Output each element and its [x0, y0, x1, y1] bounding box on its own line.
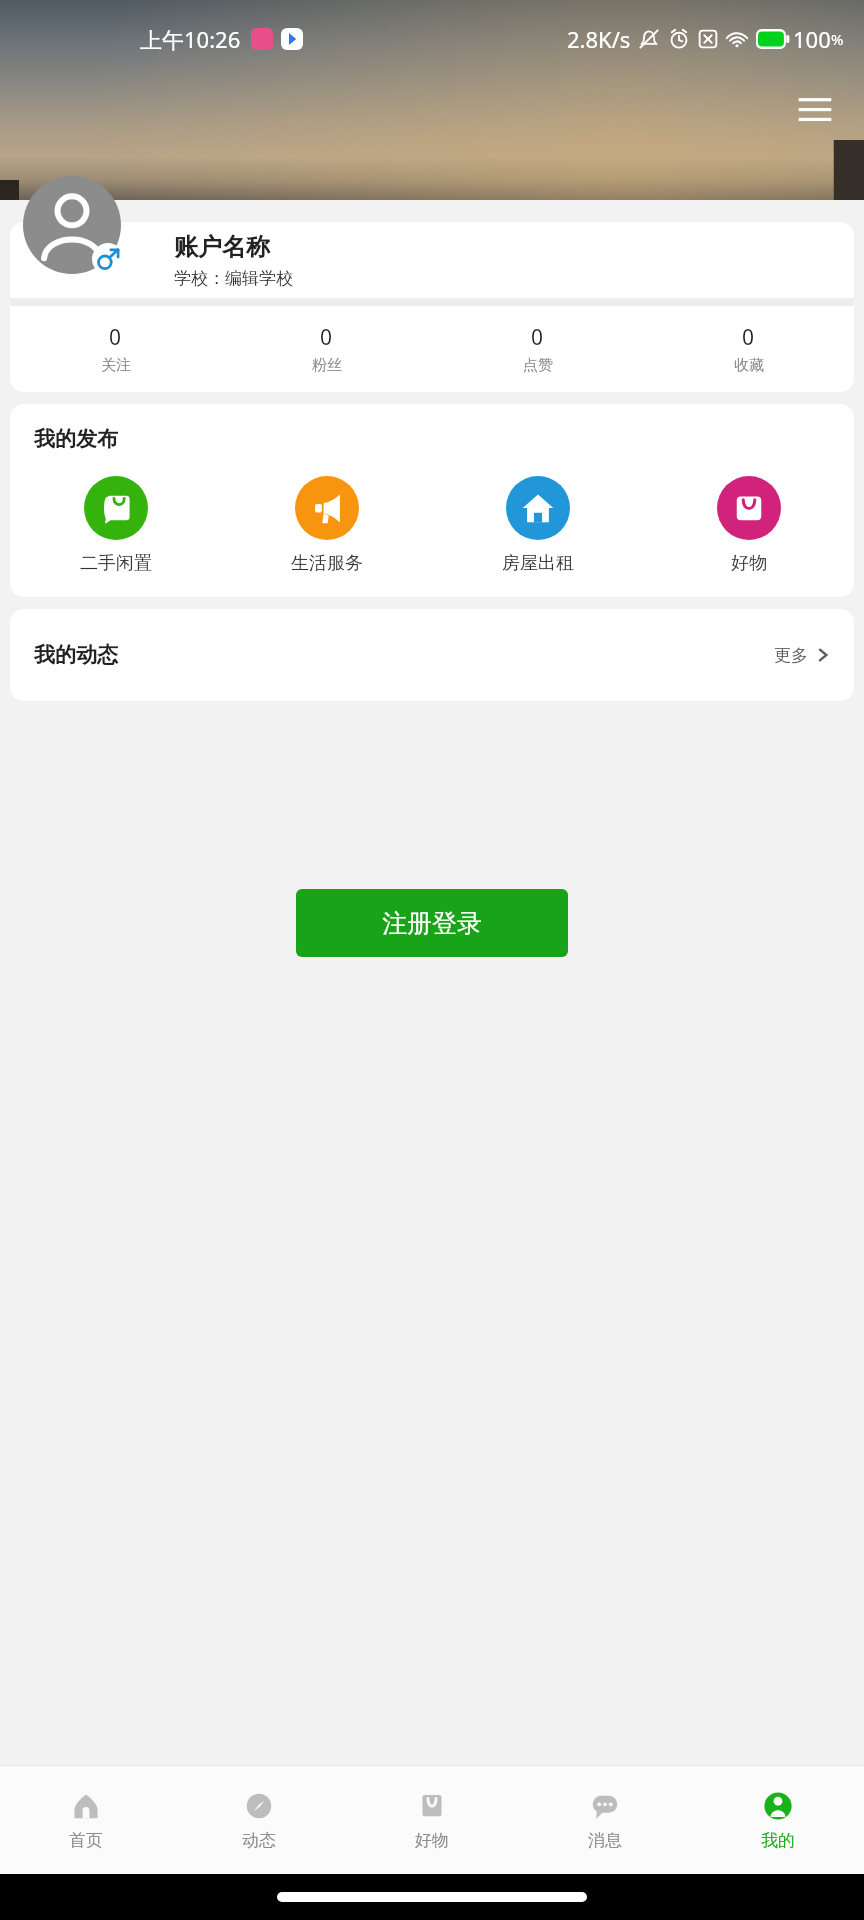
button[interactable]: 我的: [691, 1789, 864, 1851]
staticText: 二手闲置: [80, 552, 152, 575]
staticText: 2.8K/s: [567, 24, 631, 54]
staticText: 0: [109, 323, 122, 352]
staticText: 动态: [242, 1830, 276, 1851]
staticText: 点赞: [523, 356, 553, 375]
staticText: 生活服务: [291, 552, 363, 575]
staticText: 0: [531, 323, 544, 352]
staticText: 上午10:26: [140, 24, 241, 54]
staticText: 房屋出租: [502, 552, 574, 575]
button[interactable]: 好物: [345, 1789, 518, 1851]
button[interactable]: 0: [432, 323, 643, 375]
button[interactable]: 动态: [172, 1789, 345, 1851]
staticText: 注册登录: [382, 908, 482, 939]
button[interactable]: 生活服务: [221, 476, 432, 575]
staticText: %: [831, 29, 844, 49]
staticText: 我的: [761, 1830, 795, 1851]
staticText: 0: [742, 323, 755, 352]
button[interactable]: 0: [10, 323, 221, 375]
button[interactable]: 消息: [518, 1789, 691, 1851]
button[interactable]: 首页: [0, 1789, 172, 1851]
staticText: 好物: [731, 552, 767, 575]
button[interactable]: Menu: [792, 86, 838, 132]
staticText: 首页: [69, 1830, 103, 1851]
staticText: 更多: [774, 645, 808, 666]
staticText: 粉丝: [312, 356, 342, 375]
button[interactable]: 二手闲置: [10, 476, 221, 575]
staticText: 学校：编辑学校: [174, 268, 293, 289]
button[interactable]: 0: [643, 323, 854, 375]
button[interactable]: 账户名称: [10, 222, 854, 298]
button[interactable]: Avatar: [23, 176, 121, 274]
staticText: 100: [793, 24, 831, 54]
button[interactable]: 注册登录: [296, 889, 568, 957]
staticText: 关注: [101, 356, 131, 375]
staticText: 我的动态: [34, 642, 118, 668]
button[interactable]: 房屋出租: [432, 476, 643, 575]
staticText: 消息: [588, 1830, 622, 1851]
button[interactable]: 0: [221, 323, 432, 375]
staticText: 我的发布: [34, 426, 118, 452]
staticText: 0: [320, 323, 333, 352]
staticText: 收藏: [734, 356, 764, 375]
button[interactable]: 我的动态: [10, 609, 854, 701]
button[interactable]: 好物: [643, 476, 854, 575]
staticText: 好物: [415, 1830, 449, 1851]
staticText: 账户名称: [174, 232, 270, 262]
